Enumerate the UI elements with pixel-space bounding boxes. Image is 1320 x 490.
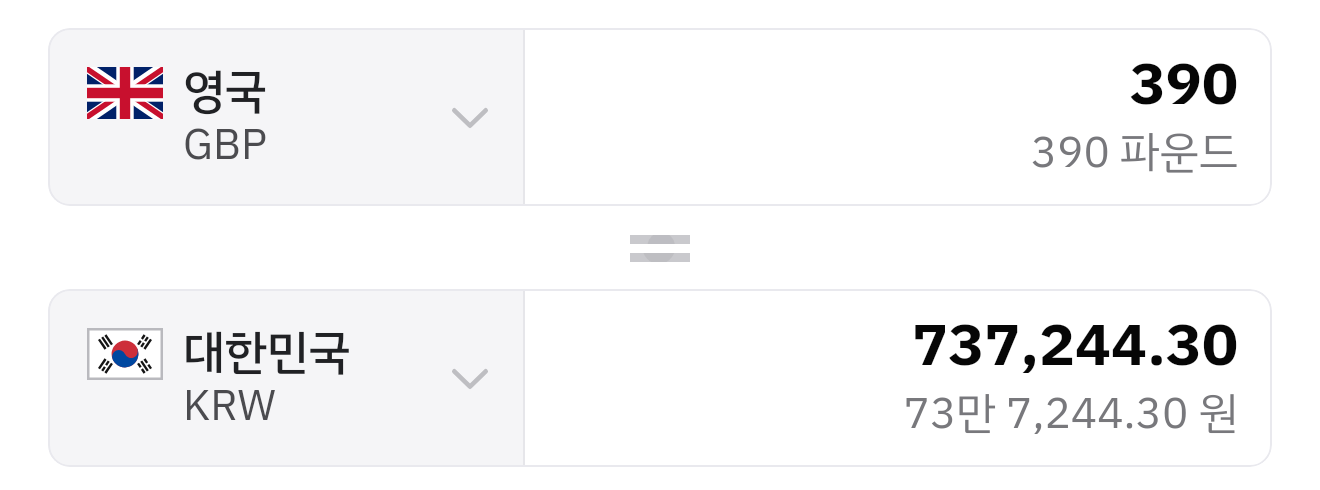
button[interactable]: 737,244.30 [525,289,1272,467]
button[interactable]: Change currency [440,90,500,146]
button[interactable]: 영국 [48,28,523,206]
staticText: 390 파운드 [1030,119,1238,185]
button[interactable]: 390 [525,28,1272,206]
button[interactable]: 대한민국 [48,289,523,467]
staticText: 영국 [183,56,267,127]
other: Equals [630,235,690,262]
staticText: KRW [183,373,276,438]
button[interactable]: Change currency [440,351,500,407]
staticText: 390 [1129,42,1238,128]
staticText: 737,244.30 [912,303,1238,389]
staticText: 73만 7,244.30 원 [903,380,1238,446]
staticText: 대한민국 [183,317,351,388]
staticText: GBP [183,112,268,177]
